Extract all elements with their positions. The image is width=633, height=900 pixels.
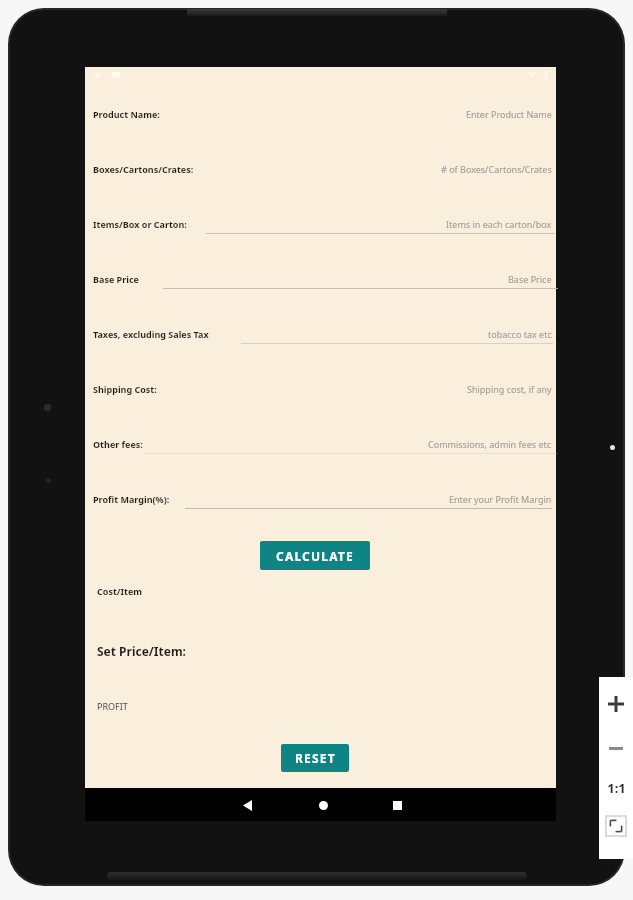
staticText: Product Name: — [93, 108, 160, 120]
button[interactable]: Base Price — [93, 254, 552, 309]
button[interactable]: CALCULATE — [260, 541, 370, 570]
staticText: Other fees: — [93, 438, 143, 450]
button[interactable]: Profit Margin(%): — [93, 474, 552, 529]
staticText: Shipping Cost: — [93, 383, 157, 395]
staticText: # of Boxes/Cartons/Crates — [441, 163, 552, 175]
staticText: Base Price — [508, 273, 552, 285]
button[interactable]: RESET — [281, 744, 349, 772]
staticText: RESET — [295, 750, 336, 766]
button[interactable]: 1:1 — [601, 773, 631, 803]
staticText: tobacco tax etc — [488, 328, 552, 340]
button[interactable]: Home — [310, 792, 336, 818]
button[interactable]: Zoom out — [601, 733, 631, 763]
staticText: Taxes, excluding Sales Tax — [93, 328, 209, 340]
button[interactable]: Boxes/Cartons/Crates: — [93, 144, 552, 199]
button[interactable]: Recent apps — [384, 792, 410, 818]
button[interactable]: Zoom in — [601, 687, 631, 721]
staticText: Items in each carton/box — [446, 218, 552, 230]
staticText: Enter your Profit Margin — [449, 493, 552, 505]
button[interactable]: Product Name: — [93, 89, 552, 144]
staticText: Shipping cost, if any — [467, 383, 552, 395]
staticText: Base Price — [93, 273, 139, 285]
staticText: 1:1 — [607, 779, 626, 797]
staticText: Profit Margin(%): — [93, 493, 170, 505]
button[interactable]: Back — [234, 792, 260, 818]
button[interactable]: Taxes, excluding Sales Tax — [93, 309, 552, 364]
staticText: CALCULATE — [276, 548, 354, 564]
staticText: Cost/Item — [97, 585, 143, 597]
button[interactable]: Shipping Cost: — [93, 364, 552, 419]
button[interactable]: Fit to screen — [603, 813, 629, 839]
staticText: PROFIT — [97, 700, 128, 712]
button[interactable]: Other fees: — [93, 419, 552, 474]
button[interactable]: Items/Box or Carton: — [93, 199, 552, 254]
staticText: Items/Box or Carton: — [93, 218, 187, 230]
staticText: Boxes/Cartons/Crates: — [93, 163, 194, 175]
staticText: Enter Product Name — [466, 108, 552, 120]
staticText: Commissions, admin fees etc — [428, 438, 552, 450]
staticText: Set Price/Item: — [97, 643, 186, 659]
